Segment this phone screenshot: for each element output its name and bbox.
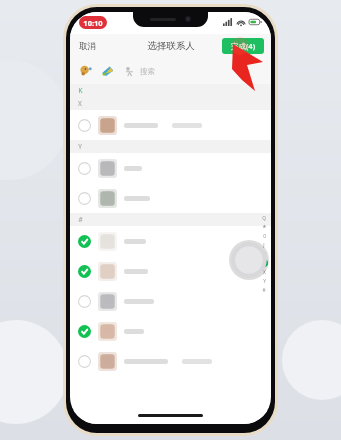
button[interactable]: 完成(4): [222, 38, 264, 54]
button[interactable]: [70, 226, 271, 256]
staticText: X: [263, 269, 266, 276]
button[interactable]: [70, 346, 271, 376]
button[interactable]: 取消: [70, 37, 102, 56]
button[interactable]: Sticker two: [101, 64, 115, 78]
staticText: X: [78, 99, 82, 108]
staticText: K: [263, 260, 266, 266]
button[interactable]: Filter: [124, 66, 135, 77]
staticText: 完成(4): [231, 41, 255, 51]
staticText: 选择联系人: [147, 40, 195, 52]
button[interactable]: [70, 316, 271, 346]
button[interactable]: Sticker one: [79, 64, 93, 78]
staticText: J: [263, 242, 265, 249]
staticText: 0: [263, 233, 266, 240]
staticText: Q: [262, 215, 266, 222]
staticText: ★: [262, 224, 267, 230]
button[interactable]: [70, 256, 271, 286]
button[interactable]: [70, 153, 271, 183]
staticText: Y: [263, 278, 266, 285]
button[interactable]: [70, 286, 271, 316]
staticText: Y: [78, 142, 82, 151]
button[interactable]: [70, 183, 271, 213]
staticText: #: [78, 215, 83, 224]
button[interactable]: Alphabet index: [259, 214, 269, 294]
button[interactable]: [70, 110, 271, 140]
staticText: 搜索: [140, 67, 155, 76]
staticText: 取消: [79, 41, 96, 52]
staticText: #: [262, 287, 266, 294]
staticText: K: [78, 86, 83, 95]
staticText: 10:10: [83, 18, 103, 28]
